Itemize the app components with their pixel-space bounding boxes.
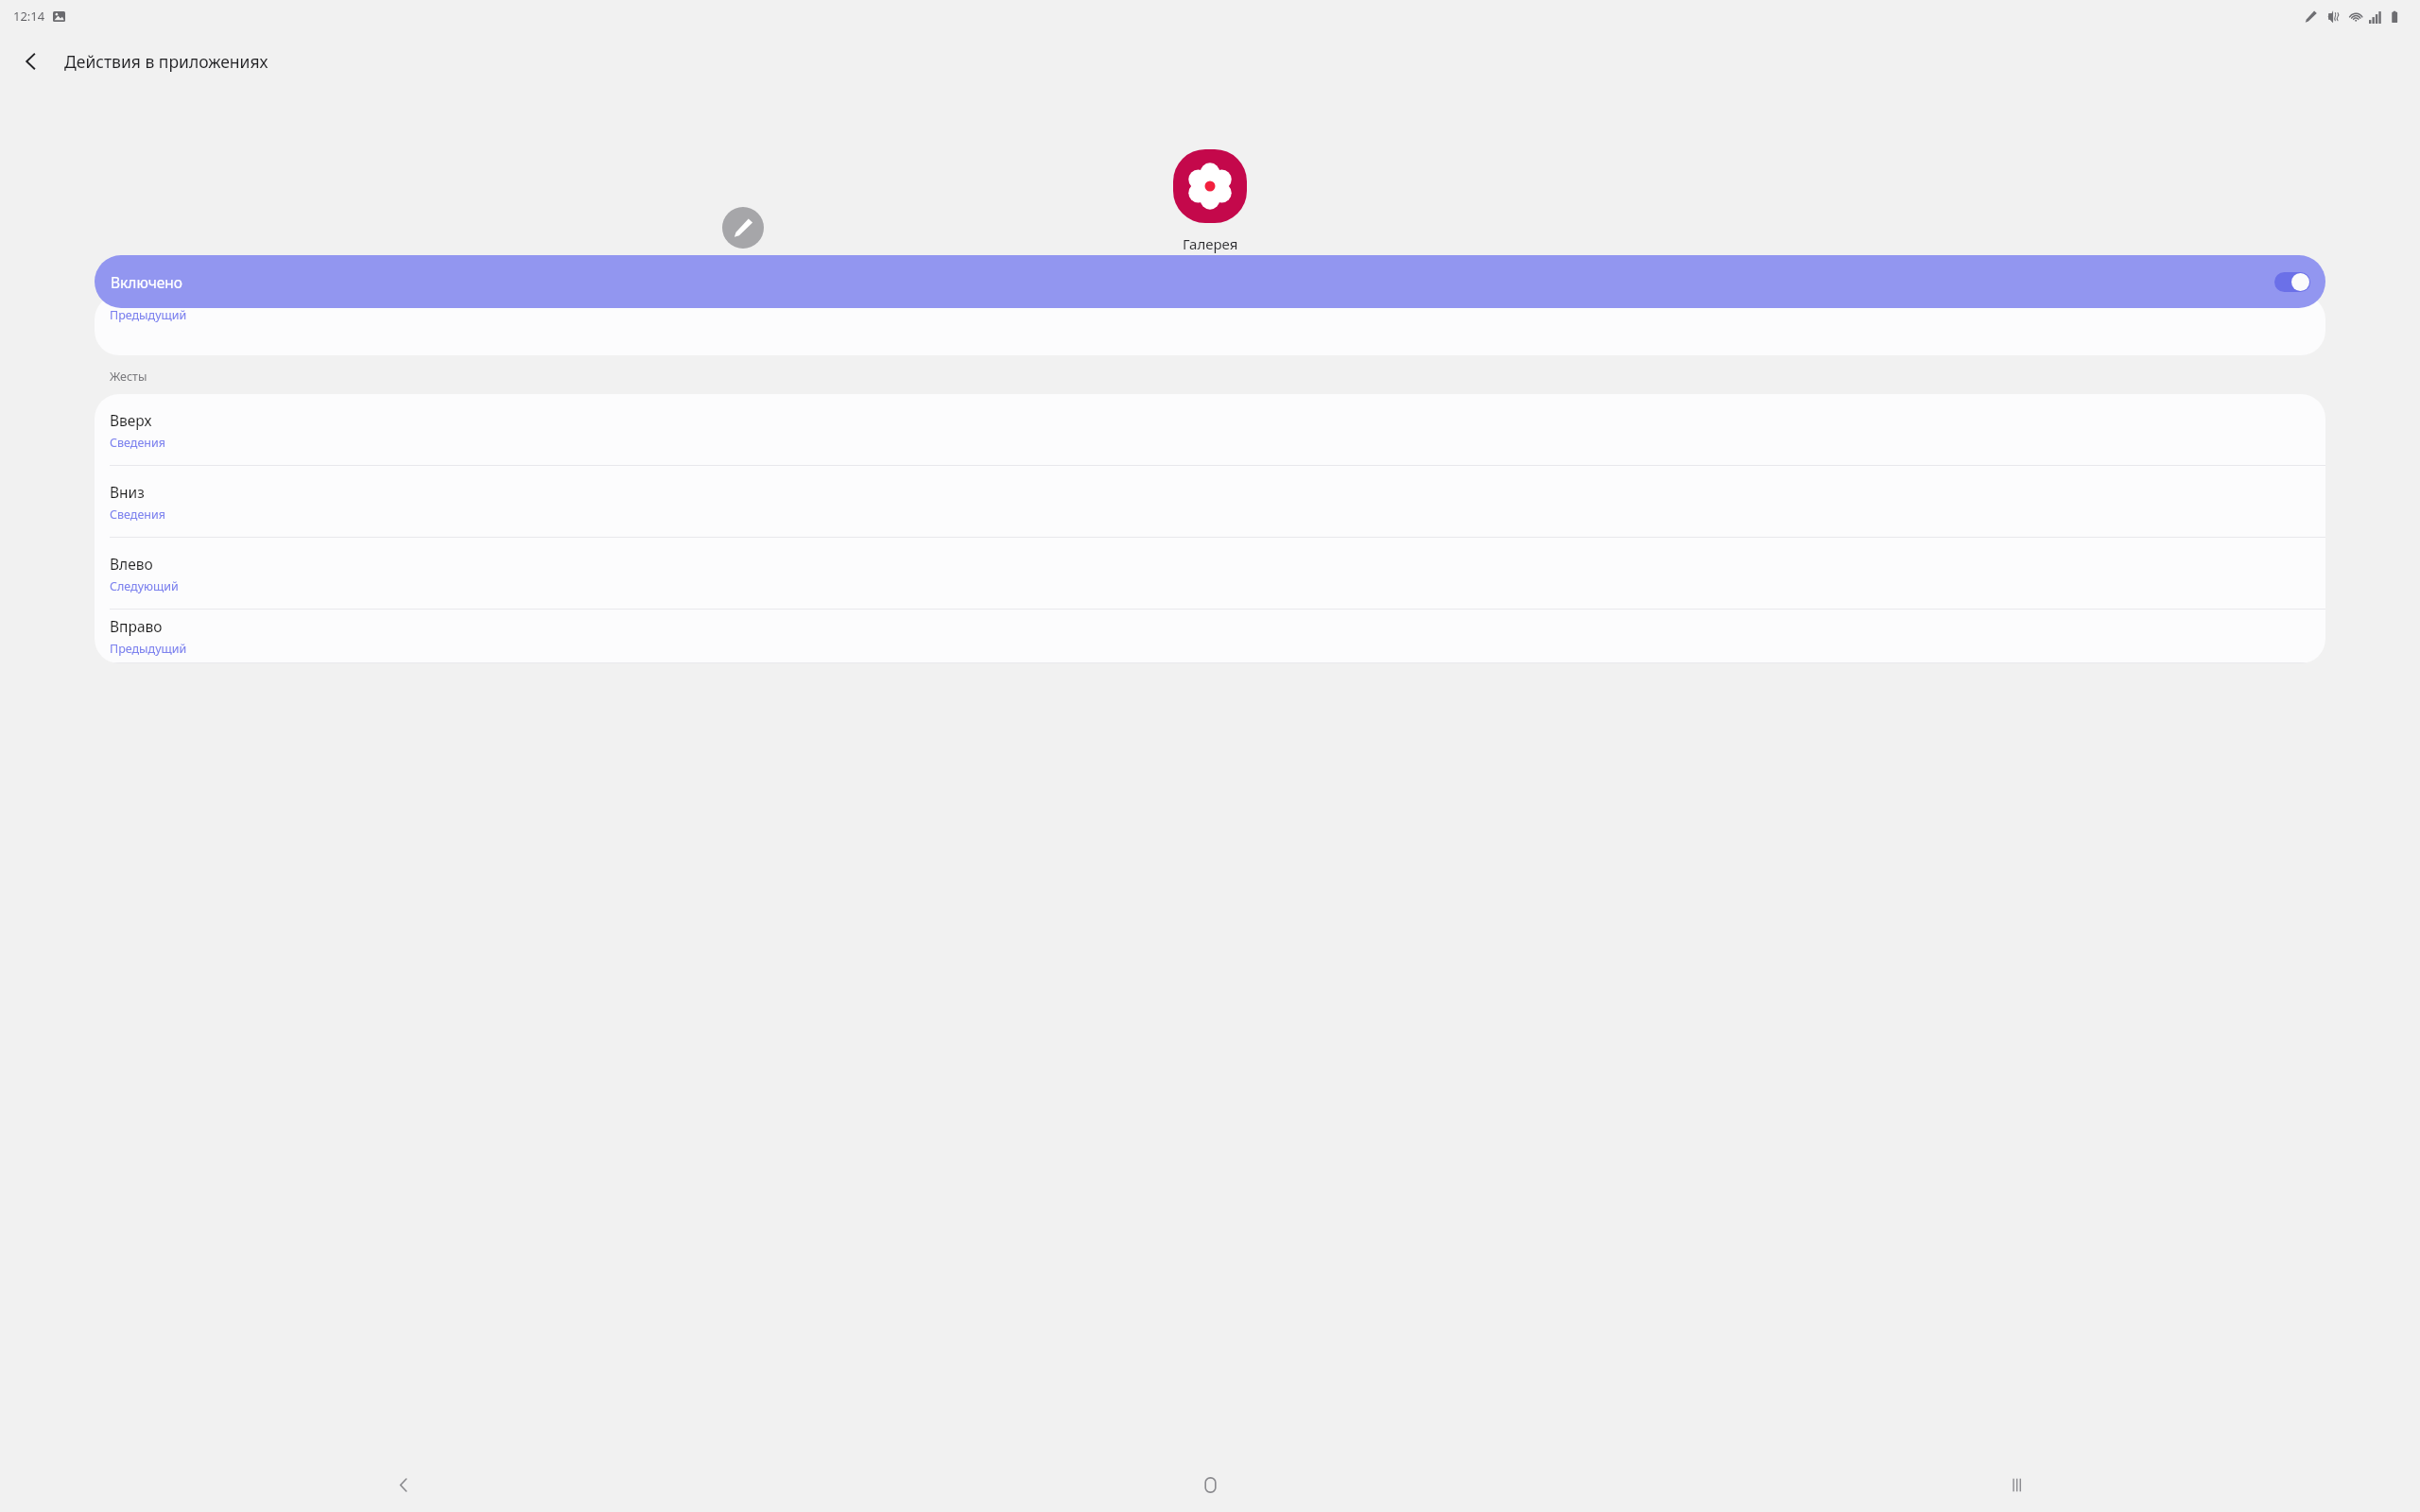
button[interactable]: Вправо <box>95 610 2325 663</box>
button[interactable]: Влево <box>95 538 2325 610</box>
staticText: Включено <box>111 272 183 292</box>
staticText: Предыдущий <box>110 641 187 657</box>
button[interactable] <box>1173 149 1247 223</box>
staticText: Действия в приложениях <box>64 50 268 73</box>
button[interactable]: Back <box>9 40 53 83</box>
staticText: Вниз <box>110 482 145 502</box>
button[interactable]: Recent apps <box>1614 1457 2420 1512</box>
staticText: Влево <box>110 554 153 574</box>
staticText: 12:14 <box>13 8 45 25</box>
button[interactable]: Edit <box>722 207 764 249</box>
button[interactable]: Двойное нажатие <box>95 295 2325 355</box>
button[interactable]: Вверх <box>95 394 2325 466</box>
staticText: Вверх <box>110 410 152 430</box>
staticText: Жесты <box>110 369 147 385</box>
staticText: Предыдущий <box>110 307 187 323</box>
staticText: Вправо <box>110 616 163 636</box>
staticText: Следующий <box>110 578 179 594</box>
staticText: Галерея <box>1183 234 1238 253</box>
button[interactable]: Home <box>807 1457 1614 1512</box>
staticText: Сведения <box>110 507 165 523</box>
button[interactable]: Вниз <box>95 466 2325 538</box>
button[interactable]: Включено <box>95 255 2325 308</box>
staticText: Сведения <box>110 435 165 451</box>
